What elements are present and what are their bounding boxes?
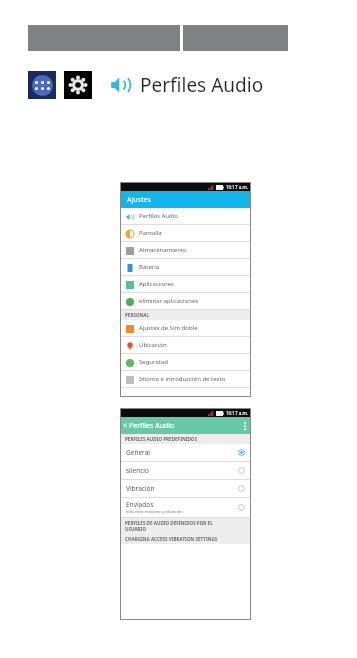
staticText: eliminar aplicaciones	[139, 297, 199, 305]
staticText: PERFILES DE AUDIO DEFINIDOS POR EL USUAR…	[125, 520, 213, 532]
staticText: CHARGING ACCESS VIBRATION SETTINGS	[125, 536, 218, 542]
button[interactable]: Seguridad	[120, 354, 251, 371]
staticText: Volumen máximo y vibración	[126, 509, 183, 515]
button[interactable]: Aplicaciones	[120, 276, 251, 293]
button[interactable]: Ajustes de Sim doble	[120, 320, 251, 337]
staticText: Almacenamiento	[139, 246, 187, 254]
staticText: Aplicaciones	[139, 280, 174, 288]
button[interactable]: Perfiles Audio	[120, 208, 251, 225]
staticText: Enviados	[126, 500, 154, 509]
button[interactable]: Ubicación	[120, 337, 251, 354]
button[interactable]: Almacenamiento	[120, 242, 251, 259]
staticText: Batería	[139, 263, 160, 271]
staticText: silencio	[126, 466, 149, 475]
staticText: PERFILES AUDIO PREDEFINIDOS	[125, 436, 197, 442]
staticText: Pantalla	[139, 229, 162, 237]
staticText: Perfiles Audio	[129, 421, 175, 431]
button[interactable]: 10:17 a.m.	[120, 408, 251, 620]
staticText: Perfiles Audio	[140, 72, 264, 98]
button[interactable]: All apps	[28, 71, 56, 99]
button[interactable]: Idioma e introducción de texto	[120, 371, 251, 388]
staticText: General	[126, 448, 150, 457]
staticText: PERSONAL	[125, 312, 150, 318]
button[interactable]: General	[120, 444, 251, 462]
staticText: Vibración	[126, 484, 155, 493]
button[interactable]: silencio	[120, 462, 251, 480]
staticText: Ajustes de Sim doble	[139, 324, 198, 332]
staticText: 10:17 a.m.	[226, 410, 248, 416]
staticText: Ajustes	[127, 195, 151, 205]
staticText: <	[123, 421, 128, 431]
staticText: Ubicación	[139, 341, 167, 349]
button[interactable]: eliminar aplicaciones	[120, 293, 251, 310]
staticText: Seguridad	[139, 358, 168, 366]
button[interactable]: 10:17 a.m.	[120, 182, 251, 397]
button[interactable]: Pantalla	[120, 225, 251, 242]
staticText: Idioma e introducción de texto	[139, 375, 226, 383]
staticText: 10:17 a.m.	[226, 184, 248, 190]
button[interactable]: Vibración	[120, 480, 251, 498]
button[interactable]: Enviados	[120, 498, 251, 518]
button[interactable]: Settings	[64, 71, 92, 99]
staticText: Perfiles Audio	[139, 212, 178, 220]
button[interactable]: More options	[244, 422, 246, 430]
button[interactable]: Batería	[120, 259, 251, 276]
